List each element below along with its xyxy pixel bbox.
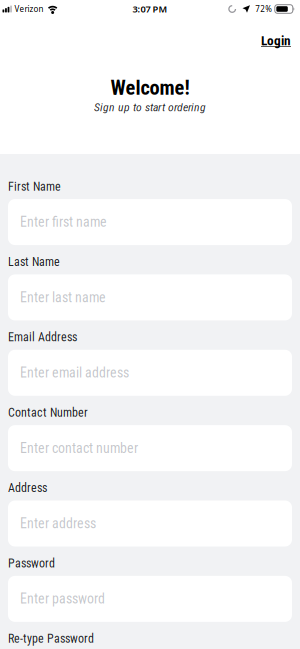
staticText: 72% [255, 4, 272, 14]
staticText: Contact Number [8, 406, 88, 420]
button[interactable]: Enter first name [8, 199, 292, 245]
staticText: Enter last name [20, 289, 106, 306]
staticText: Address [8, 481, 47, 495]
staticText: Email Address [8, 330, 77, 344]
staticText: Enter email address [20, 365, 129, 381]
staticText: Password [8, 556, 55, 570]
staticText: Login [261, 33, 291, 49]
staticText: Re-type Password [8, 632, 94, 646]
button[interactable]: Enter email address [8, 350, 292, 396]
staticText: Welcome! [110, 76, 189, 100]
staticText: Enter contact number [20, 440, 138, 456]
staticText: Last Name [8, 255, 60, 269]
staticText: Sign up to start ordering [94, 100, 206, 114]
button[interactable]: Login [261, 33, 291, 49]
staticText: Enter password [20, 591, 105, 607]
staticText: First Name [8, 179, 61, 194]
staticText: Verizon [14, 4, 43, 14]
staticText: Enter first name [20, 214, 107, 230]
button[interactable]: Enter last name [8, 274, 292, 320]
staticText: Enter address [20, 515, 96, 532]
staticText: 3:07 PM [132, 3, 167, 15]
button[interactable]: Enter password [8, 576, 292, 622]
button[interactable]: Enter contact number [8, 425, 292, 471]
button[interactable]: Enter address [8, 500, 292, 546]
